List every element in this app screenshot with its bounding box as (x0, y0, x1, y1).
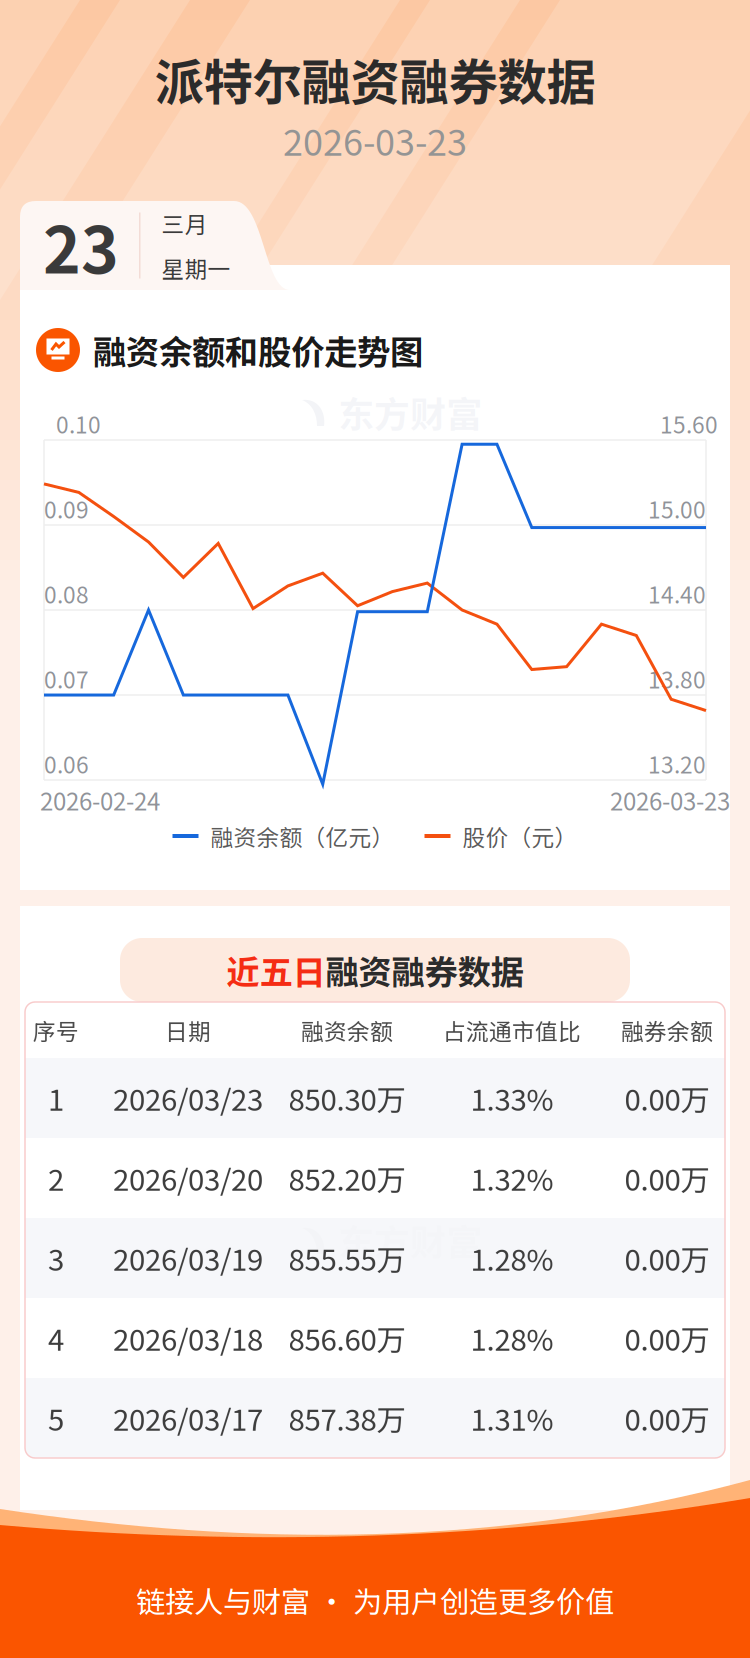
staticText: 2026-03-23 (283, 114, 467, 166)
staticText: 东方财富 (338, 1214, 482, 1266)
staticText: 13.80 (648, 662, 706, 695)
staticText: 0.09 (44, 492, 89, 525)
staticText: 3 (48, 1237, 64, 1279)
staticText: 1.32% (470, 1157, 553, 1199)
staticText: 2 (48, 1157, 64, 1199)
staticText: 链接人与财富 · 为用户创造更多价值 (136, 1579, 614, 1621)
staticText: 23 (43, 199, 119, 292)
staticText: 15.60 (660, 407, 718, 440)
staticText: 0.07 (44, 662, 89, 695)
staticText: 4 (48, 1317, 64, 1359)
staticText: 0.08 (44, 577, 89, 610)
staticText: 857.38万 (288, 1397, 405, 1439)
staticText: 2026/03/23 (113, 1077, 263, 1119)
staticText: 0.00万 (624, 1397, 709, 1439)
staticText: 融资余额 (301, 1014, 393, 1046)
staticText: 东方财富 (338, 386, 482, 438)
staticText: 股价（元） (462, 820, 577, 852)
staticText: 融券余额 (621, 1014, 713, 1046)
staticText: 星期一 (161, 251, 230, 284)
staticText: 0.10 (56, 407, 101, 440)
staticText: 15.00 (648, 492, 706, 525)
staticText: 0.00万 (624, 1237, 709, 1279)
staticText: 2026/03/18 (113, 1317, 263, 1359)
staticText: 0.00万 (624, 1157, 709, 1199)
staticText: 1 (48, 1077, 64, 1119)
staticText: 占流通市值比 (443, 1014, 581, 1046)
staticText: 融资融券数据 (325, 946, 523, 994)
staticText: 14.40 (648, 577, 706, 610)
staticText: 2026-02-24 (40, 783, 160, 817)
staticText: 2026-03-23 (610, 783, 730, 817)
staticText: 融资余额（亿元） (210, 820, 394, 852)
staticText: 2026/03/19 (113, 1237, 263, 1279)
staticText: 2026/03/20 (113, 1157, 263, 1199)
staticText: 2026/03/17 (113, 1397, 263, 1439)
staticText: 1.28% (470, 1317, 553, 1359)
staticText: 0.00万 (624, 1317, 709, 1359)
staticText: 5 (48, 1397, 64, 1439)
staticText: 派特尔融资融券数据 (154, 43, 595, 115)
staticText: 融资余额和股价走势图 (93, 326, 423, 374)
staticText: 850.30万 (288, 1077, 405, 1119)
staticText: 日期 (165, 1014, 211, 1046)
staticText: 1.33% (470, 1077, 553, 1119)
staticText: 856.60万 (288, 1317, 405, 1359)
staticText: 1.28% (470, 1237, 553, 1279)
staticText: 0.00万 (624, 1077, 709, 1119)
staticText: 三月 (161, 207, 207, 239)
staticText: 13.20 (648, 747, 706, 780)
staticText: 近五日 (226, 946, 325, 994)
staticText: 序号 (33, 1014, 79, 1046)
staticText: 1.31% (470, 1397, 553, 1439)
staticText: 0.06 (44, 747, 89, 780)
staticText: 855.55万 (288, 1237, 405, 1279)
staticText: 852.20万 (288, 1157, 405, 1199)
